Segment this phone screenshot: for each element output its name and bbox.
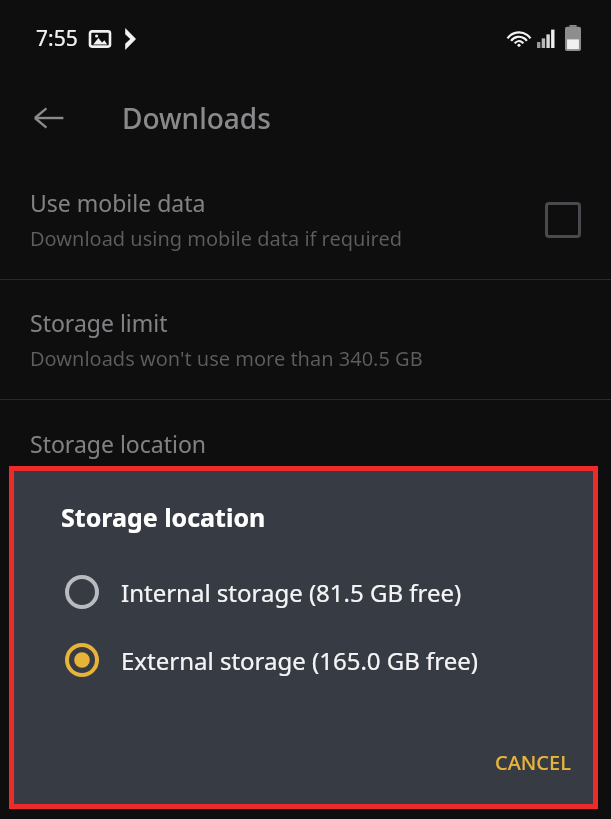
- staticText: Use mobile data: [30, 187, 206, 218]
- button[interactable]: External storage (165.0 GB free): [14, 639, 593, 681]
- staticText: External storage (165.0 GB free): [121, 644, 479, 677]
- button[interactable]: CANCEL: [473, 735, 593, 790]
- staticText: Storage location: [30, 428, 207, 459]
- staticText: Storage limit: [30, 307, 168, 338]
- button[interactable]: Storage limit: [0, 280, 611, 399]
- staticText: Storage location: [61, 500, 266, 534]
- button[interactable]: Back: [20, 89, 78, 147]
- staticText: CANCEL: [495, 749, 571, 776]
- staticText: Downloads: [122, 99, 271, 137]
- button[interactable]: Storage location: [0, 400, 611, 500]
- staticText: Downloads won't use more than 340.5 GB: [30, 345, 423, 372]
- button[interactable]: Use mobile data: [0, 160, 611, 279]
- staticText: 7:55: [36, 24, 78, 53]
- staticText: Download using mobile data if required: [30, 225, 403, 252]
- button[interactable]: Internal storage (81.5 GB free): [14, 571, 593, 613]
- button[interactable]: Use mobile data checkbox: [537, 194, 589, 246]
- staticText: Internal storage (81.5 GB free): [121, 576, 462, 609]
